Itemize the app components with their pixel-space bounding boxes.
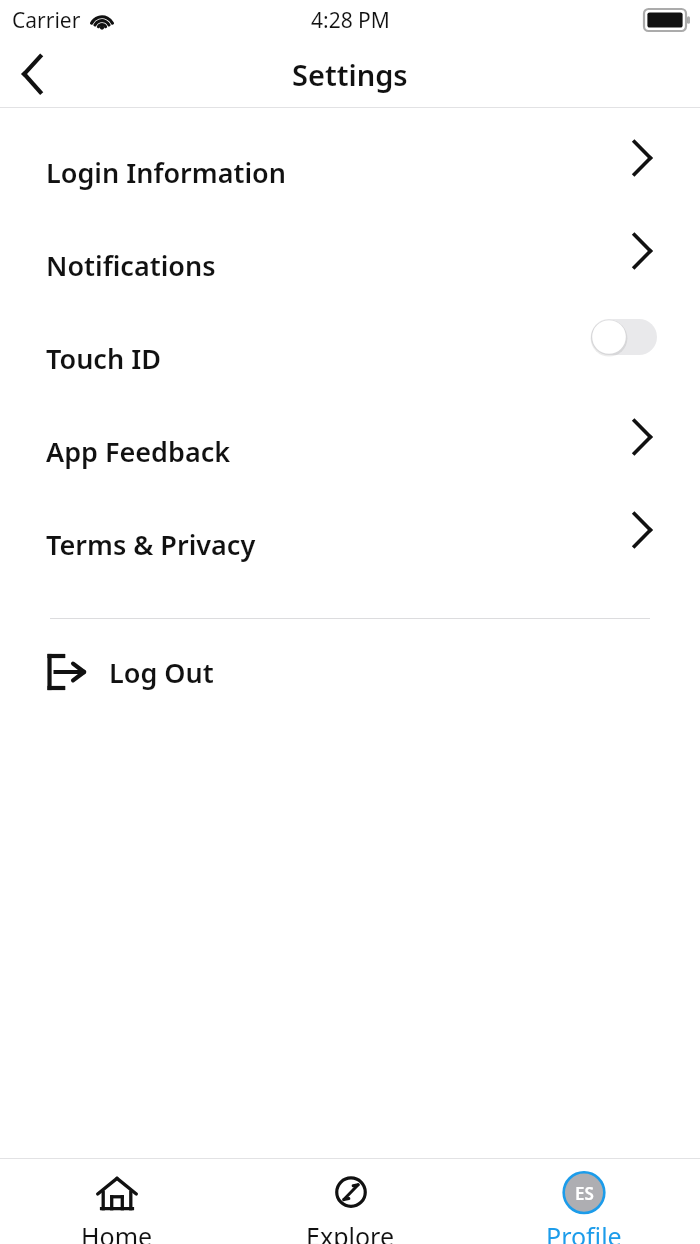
staticText: Login Information (46, 154, 287, 191)
button[interactable]: Login Information (0, 126, 700, 219)
button[interactable]: Log Out (0, 619, 700, 725)
staticText: Home (81, 1219, 153, 1244)
button[interactable]: Back (0, 43, 66, 105)
staticText: ES (575, 1182, 594, 1205)
staticText: Profile (546, 1219, 622, 1244)
staticText: Log Out (109, 654, 214, 691)
staticText: Touch ID (46, 340, 161, 377)
button[interactable]: Touch ID (0, 312, 700, 405)
button[interactable]: Notifications (0, 219, 700, 312)
staticText: Explore (306, 1219, 395, 1244)
staticText: Carrier (12, 6, 81, 35)
staticText: 4:28 PM (311, 6, 390, 35)
button[interactable]: Touch ID toggle (591, 319, 657, 355)
staticText: App Feedback (46, 433, 231, 470)
button[interactable]: Terms & Privacy (0, 498, 700, 591)
button[interactable]: ES (467, 1159, 700, 1244)
button[interactable]: Explore (234, 1159, 467, 1244)
button[interactable]: App Feedback (0, 405, 700, 498)
button[interactable]: Home (0, 1159, 234, 1244)
staticText: Settings (292, 55, 408, 94)
staticText: Terms & Privacy (46, 526, 256, 563)
staticText: Notifications (46, 247, 216, 284)
